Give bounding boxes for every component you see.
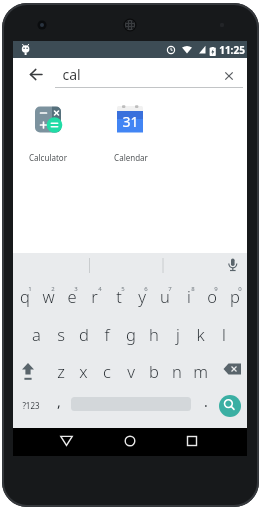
staticText: f [104,323,110,345]
button[interactable]: l [212,316,235,352]
staticText: i [187,285,191,307]
button[interactable] [25,101,85,163]
staticText: 7 [168,285,172,293]
button[interactable]: e [60,278,83,314]
button[interactable] [29,68,44,81]
staticText: 6 [144,285,148,293]
staticText: 2 [51,285,55,293]
staticText: 9 [214,285,218,293]
staticText: 3 [74,285,78,293]
button[interactable]: w [37,278,60,314]
button[interactable]: ?123 [18,393,44,417]
button[interactable]: , [51,389,67,413]
staticText: p [230,285,240,307]
button[interactable]: n [165,353,188,389]
staticText: x [79,360,88,382]
staticText: v [127,360,135,382]
staticText: b [149,360,159,382]
staticText: a [32,323,41,345]
button[interactable]: m [189,353,212,389]
button[interactable]: j [166,316,189,352]
staticText: l [222,323,226,345]
staticText: ?123 [22,400,40,411]
staticText: d [79,323,89,345]
button[interactable]: c [95,353,118,389]
staticText: t [116,285,122,307]
staticText: g [126,323,136,345]
button[interactable]: o [200,278,223,314]
button[interactable]: 31 [111,101,171,163]
button[interactable]: k [189,316,212,352]
staticText: h [149,323,159,345]
button[interactable]: d [72,316,95,352]
staticText: cal [62,65,81,84]
button[interactable]: r [83,278,106,314]
staticText: o [207,285,217,307]
button[interactable]: x [72,353,95,389]
button[interactable]: i [177,278,200,314]
button[interactable] [120,431,140,451]
button[interactable] [222,257,243,275]
button[interactable]: s [49,316,72,352]
staticText: , [57,392,61,411]
staticText: k [196,323,205,345]
button[interactable]: t [107,278,130,314]
button[interactable]: a [25,316,48,352]
staticText: Calculator [29,152,67,163]
button[interactable]: v [119,353,142,389]
staticText: z [57,360,65,382]
staticText: w [42,285,55,307]
button[interactable]: p [223,278,246,314]
staticText: 5 [121,285,125,293]
staticText: 8 [191,285,195,293]
staticText: 4 [98,285,102,293]
button[interactable]: . [198,389,214,413]
staticText: e [67,285,77,307]
button[interactable] [17,360,39,388]
button[interactable] [224,71,234,81]
button[interactable]: u [153,278,176,314]
button[interactable]: f [95,316,118,352]
button[interactable] [222,361,244,385]
staticText: y [138,285,146,307]
staticText: 0 [238,285,242,293]
staticText: m [193,360,208,382]
button[interactable]: h [142,316,165,352]
button[interactable]: b [142,353,165,389]
button[interactable]: z [49,353,72,389]
button[interactable]: q [13,278,36,314]
staticText: 1 [28,285,32,293]
staticText: 11:25 [219,43,245,56]
staticText: q [20,285,30,307]
staticText: 31 [122,112,139,131]
staticText: n [172,360,182,382]
staticText: . [204,392,208,411]
button[interactable] [57,431,77,451]
staticText: s [57,323,65,345]
button[interactable] [182,431,202,451]
button[interactable] [219,395,241,417]
button[interactable]: y [130,278,153,314]
staticText: Calendar [114,152,148,163]
staticText: c [103,360,111,382]
button[interactable]: g [119,316,142,352]
staticText: u [160,285,170,307]
staticText: j [176,323,180,345]
staticText: r [91,285,98,307]
